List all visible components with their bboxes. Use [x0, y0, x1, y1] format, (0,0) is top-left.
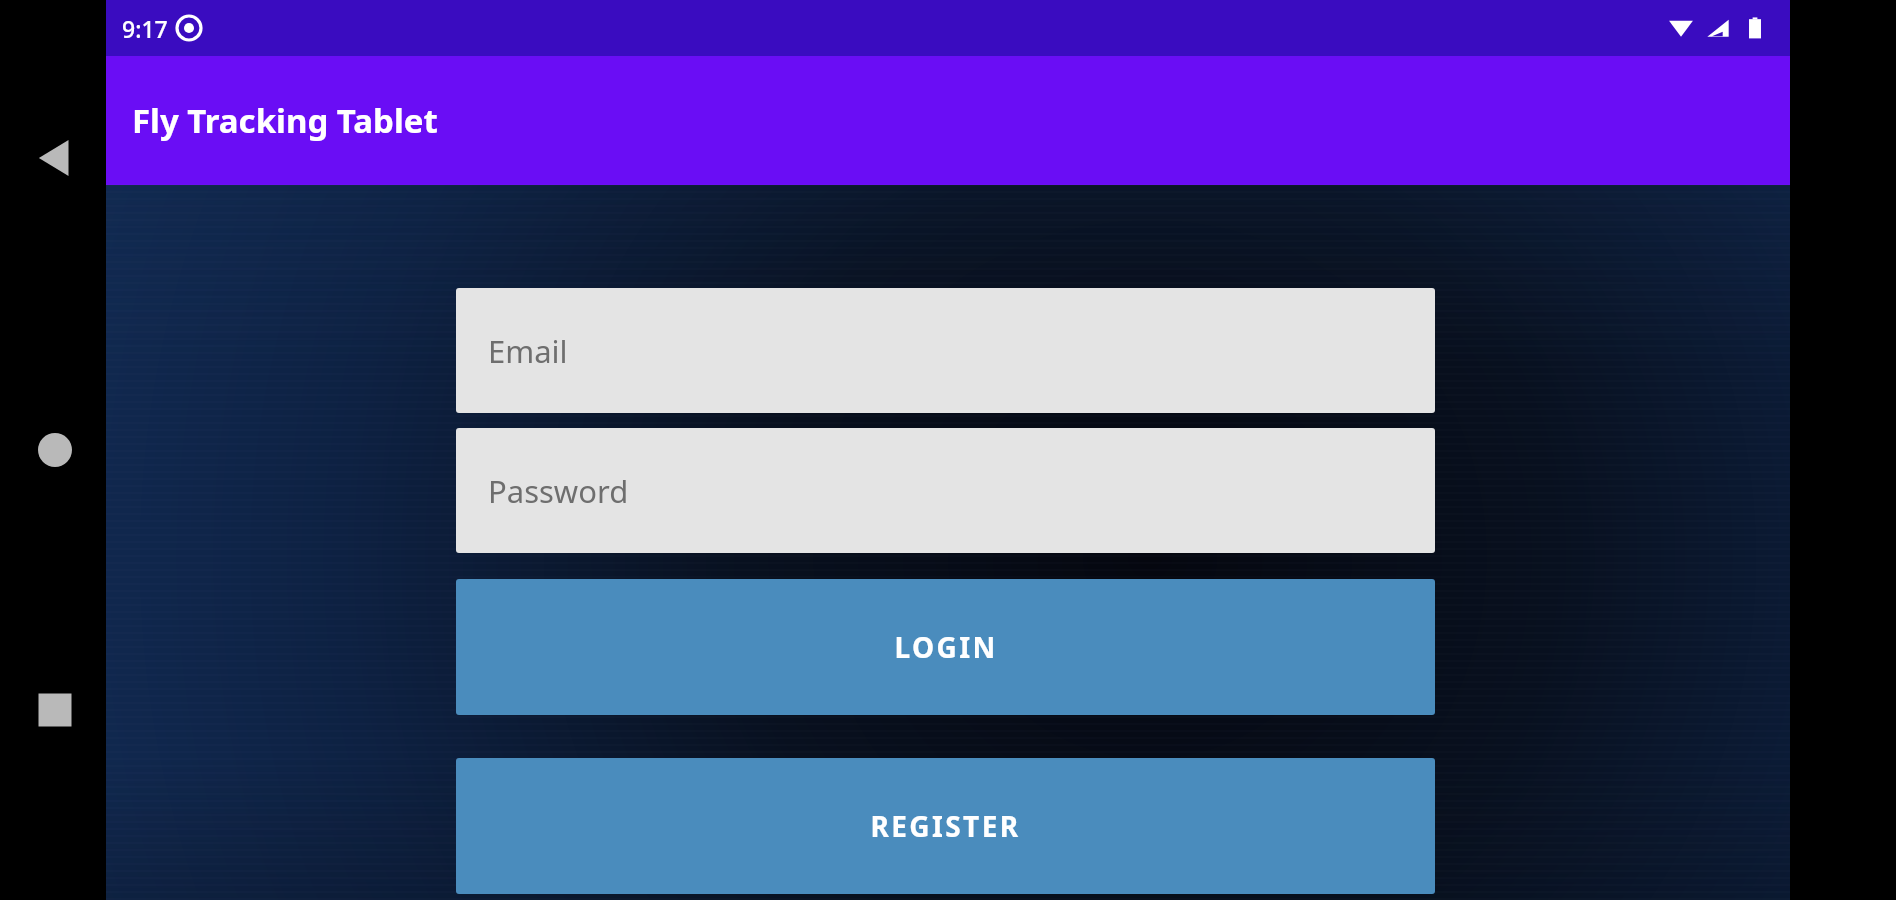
staticText: Fly Tracking Tablet [132, 98, 438, 143]
staticText: Password [488, 470, 629, 512]
staticText: Email [488, 330, 568, 372]
button[interactable]: LOGIN [456, 579, 1435, 715]
button[interactable]: Home [18, 413, 92, 487]
staticText: LOGIN [894, 628, 998, 666]
button[interactable]: Back [18, 121, 92, 195]
button[interactable]: Email [456, 288, 1435, 413]
button[interactable]: Password [456, 428, 1435, 553]
button[interactable]: REGISTER [456, 758, 1435, 894]
staticText: 9:17 [122, 13, 168, 44]
staticText: REGISTER [870, 807, 1021, 845]
button[interactable]: Recent apps [18, 673, 92, 747]
